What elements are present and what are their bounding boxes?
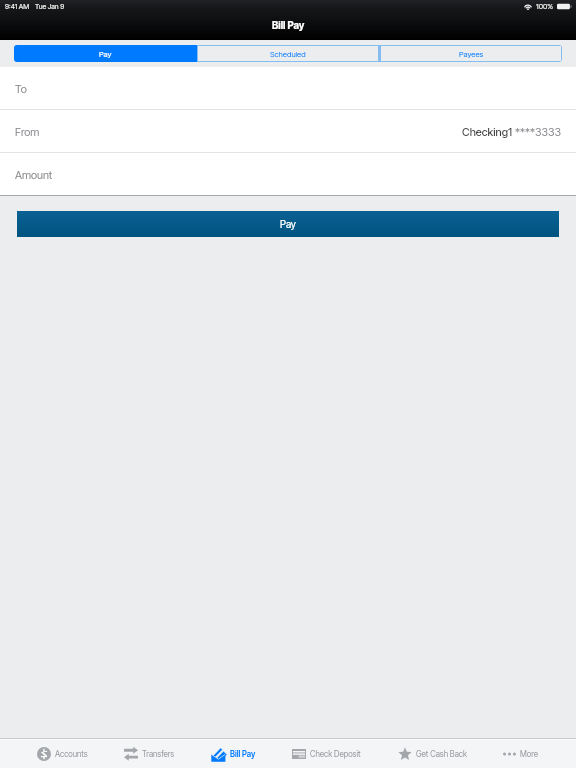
button[interactable]: Pay	[14, 45, 197, 62]
staticText: Transfers	[142, 749, 175, 759]
staticText: Bill Pay	[272, 19, 305, 31]
staticText: More	[520, 749, 538, 759]
button[interactable]: Get Cash Back	[398, 747, 467, 761]
staticText: Amount	[15, 168, 53, 181]
staticText: Payees	[459, 49, 484, 58]
other: Transfers	[124, 747, 138, 761]
button[interactable]: Amount	[0, 153, 576, 195]
staticText: Scheduled	[270, 49, 306, 58]
other: More	[503, 752, 516, 756]
button[interactable]: Bill Pay	[211, 746, 256, 762]
staticText: Accounts	[55, 749, 88, 759]
button[interactable]: From	[0, 110, 576, 152]
staticText: Pay	[280, 218, 296, 230]
staticText: Bill Pay	[230, 749, 256, 759]
other: Bill Pay	[211, 746, 226, 762]
staticText: To	[15, 82, 27, 95]
other: Check Deposit	[292, 749, 306, 759]
staticText: Checking1	[462, 125, 513, 138]
button[interactable]: To	[0, 67, 576, 109]
button[interactable]: Payees	[380, 45, 562, 62]
staticText: Pay	[99, 49, 112, 58]
other: Accounts	[37, 747, 51, 761]
staticText: From	[15, 125, 40, 138]
button[interactable]: Transfers	[124, 747, 175, 761]
button[interactable]: More	[503, 749, 538, 759]
staticText: 100%	[536, 2, 554, 11]
button[interactable]: Scheduled	[197, 45, 379, 62]
button[interactable]: Accounts	[37, 747, 88, 761]
staticText: 9:41 AM	[5, 2, 30, 10]
button[interactable]: Check Deposit	[292, 749, 361, 759]
button[interactable]: Pay	[17, 211, 559, 237]
staticText: Check Deposit	[310, 749, 361, 759]
staticText: ****3333	[515, 125, 561, 138]
staticText: Get Cash Back	[416, 749, 467, 759]
other: Get Cash Back	[398, 747, 412, 761]
staticText: Tue Jan 9	[35, 2, 65, 10]
